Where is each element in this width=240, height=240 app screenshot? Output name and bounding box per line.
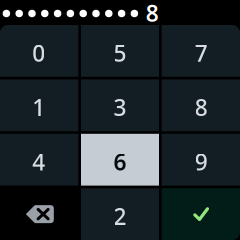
staticText: 5 [113,38,126,68]
staticText: 4 [32,147,45,177]
staticText: 8 [195,92,208,122]
button[interactable]: Delete [0,188,78,240]
staticText: 3 [113,92,126,122]
button[interactable]: 6 [81,134,159,186]
staticText: 8 [146,0,159,28]
button[interactable]: 4 [0,134,78,186]
button[interactable]: Confirm [162,188,240,240]
button[interactable]: 8 [162,79,240,131]
button[interactable]: 3 [81,79,159,131]
staticText: 1 [32,92,45,122]
staticText: 7 [195,38,208,68]
staticText: 0 [32,38,45,68]
button[interactable]: 0 [0,25,78,77]
button[interactable]: 1 [0,79,78,131]
button[interactable]: 9 [162,134,240,186]
staticText: 9 [195,147,208,177]
button[interactable]: 2 [81,188,159,240]
staticText: 2 [113,201,126,231]
button[interactable]: 7 [162,25,240,77]
button[interactable]: 5 [81,25,159,77]
staticText: 6 [113,147,126,177]
